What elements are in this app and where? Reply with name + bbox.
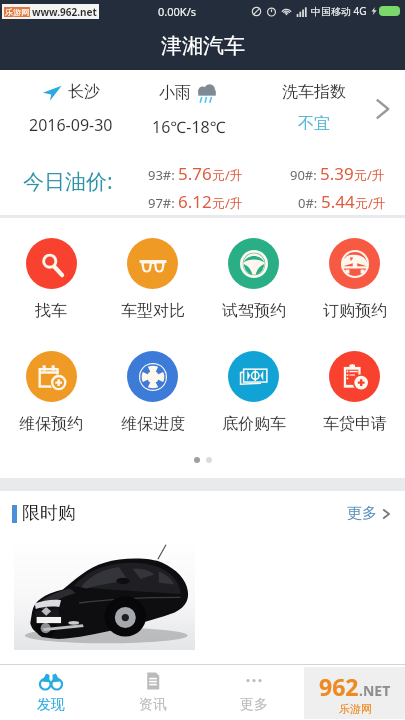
button[interactable]: 车型对比 xyxy=(102,238,203,321)
staticText: 元/升 xyxy=(355,194,386,212)
staticText: 16℃-18℃ xyxy=(152,116,226,138)
staticText: 6.12 xyxy=(178,190,212,213)
staticText: 0.00K/s xyxy=(158,4,196,19)
staticText: 更多 xyxy=(347,504,377,523)
staticText: 洗车指数 xyxy=(282,82,346,102)
staticText: 97#: xyxy=(148,194,175,212)
staticText: 中国移动 4G xyxy=(311,4,367,18)
staticText: 乐游网 xyxy=(339,702,372,716)
button[interactable]: 试驾预约 xyxy=(203,238,304,321)
button[interactable]: 找车 xyxy=(0,238,102,321)
staticText: 更多 xyxy=(240,696,268,714)
staticText: 962 xyxy=(319,671,359,702)
button[interactable]: 更多 xyxy=(335,504,405,523)
staticText: 不宜 xyxy=(298,114,330,134)
staticText: 90#: xyxy=(290,166,317,184)
staticText: www.962.net xyxy=(32,5,97,19)
staticText: 元/升 xyxy=(212,194,243,212)
button[interactable] xyxy=(14,538,195,650)
staticText: 2016-09-30 xyxy=(29,114,113,136)
staticText: 底价购车 xyxy=(222,414,286,434)
staticText: 5.76 xyxy=(178,162,212,185)
button[interactable]: 底价购车 xyxy=(203,351,304,434)
staticText: 限时购 xyxy=(22,502,76,525)
staticText: 车型对比 xyxy=(121,301,185,321)
staticText: 5.39 xyxy=(320,162,354,185)
staticText: .NET xyxy=(359,681,391,700)
staticText: 元/升 xyxy=(212,166,243,184)
staticText: 试驾预约 xyxy=(222,301,286,321)
button[interactable]: 发现 xyxy=(0,665,102,720)
staticText: 乐游网 xyxy=(5,7,29,17)
staticText: 订购预约 xyxy=(323,301,387,321)
button[interactable]: 更多 xyxy=(203,665,304,720)
staticText: 5.44 xyxy=(321,190,355,213)
button[interactable]: 资讯 xyxy=(102,665,203,720)
staticText: 0#: xyxy=(298,194,318,212)
staticText: 元/升 xyxy=(354,166,385,184)
staticText: 资讯 xyxy=(139,696,167,714)
button[interactable]: 维保进度 xyxy=(102,351,203,434)
staticText: 找车 xyxy=(35,301,67,321)
button[interactable]: 维保预约 xyxy=(0,351,102,434)
staticText: 长沙 xyxy=(68,82,100,102)
button[interactable]: 订购预约 xyxy=(304,238,405,321)
staticText: 车贷申请 xyxy=(323,414,387,434)
button[interactable]: 更多天气 xyxy=(365,92,399,126)
staticText: 小雨 xyxy=(159,83,191,103)
staticText: 93#: xyxy=(148,166,175,184)
staticText: 津湘汽车 xyxy=(161,33,245,59)
staticText: 维保进度 xyxy=(121,414,185,434)
button[interactable]: 车贷申请 xyxy=(304,351,405,434)
staticText: 维保预约 xyxy=(19,414,83,434)
staticText: 今日油价: xyxy=(23,167,113,196)
staticText: 发现 xyxy=(37,696,65,714)
